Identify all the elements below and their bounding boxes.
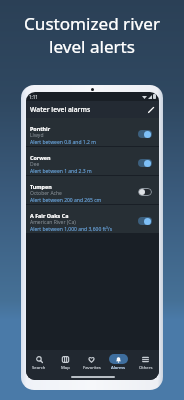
staticText: Ponthir — [30, 125, 51, 132]
staticText: Dee — [30, 161, 40, 168]
button[interactable]: Ponthir — [26, 118, 159, 146]
staticText: Alert between 1,000 and 3,600 ft³/s — [30, 226, 113, 233]
staticText: Alarms — [111, 365, 126, 371]
staticText: Corwen — [30, 154, 51, 161]
button[interactable]: Alarms — [105, 350, 132, 374]
button[interactable]: Search — [26, 350, 52, 374]
staticText: Alert between 1 and 2.3 m — [30, 168, 92, 175]
button[interactable]: Toggle alarm — [138, 159, 152, 167]
staticText: Alert between 0.8 and 1.2 m — [30, 139, 96, 146]
staticText: Water level alarms — [30, 105, 91, 114]
staticText: Favorites — [83, 365, 101, 371]
staticText: Map — [61, 365, 70, 371]
staticText: Tumpen — [30, 183, 52, 190]
staticText: Others — [139, 365, 153, 371]
staticText: Llwyd — [30, 132, 44, 139]
staticText: October Ache — [30, 190, 62, 197]
staticText: Alert between 200 and 265 cm — [30, 197, 102, 204]
staticText: A Fair Oaks Ca — [30, 212, 69, 219]
button[interactable]: Favorites — [78, 350, 105, 374]
button[interactable]: Tumpen — [26, 176, 159, 204]
staticText: 1:11 — [29, 94, 38, 100]
button[interactable]: Corwen — [26, 147, 159, 175]
button[interactable]: Others — [132, 350, 159, 374]
button[interactable]: Map — [52, 350, 78, 374]
button[interactable]: Edit — [144, 103, 157, 116]
staticText: level alerts — [49, 35, 135, 58]
staticText: Customized river — [24, 12, 160, 35]
button[interactable]: A Fair Oaks Ca — [26, 205, 159, 233]
button[interactable]: Toggle alarm — [138, 130, 152, 138]
staticText: Search — [32, 365, 46, 371]
button[interactable]: Toggle alarm — [138, 188, 152, 196]
staticText: American River (Ca) — [30, 219, 76, 226]
button[interactable]: Toggle alarm — [138, 217, 152, 225]
